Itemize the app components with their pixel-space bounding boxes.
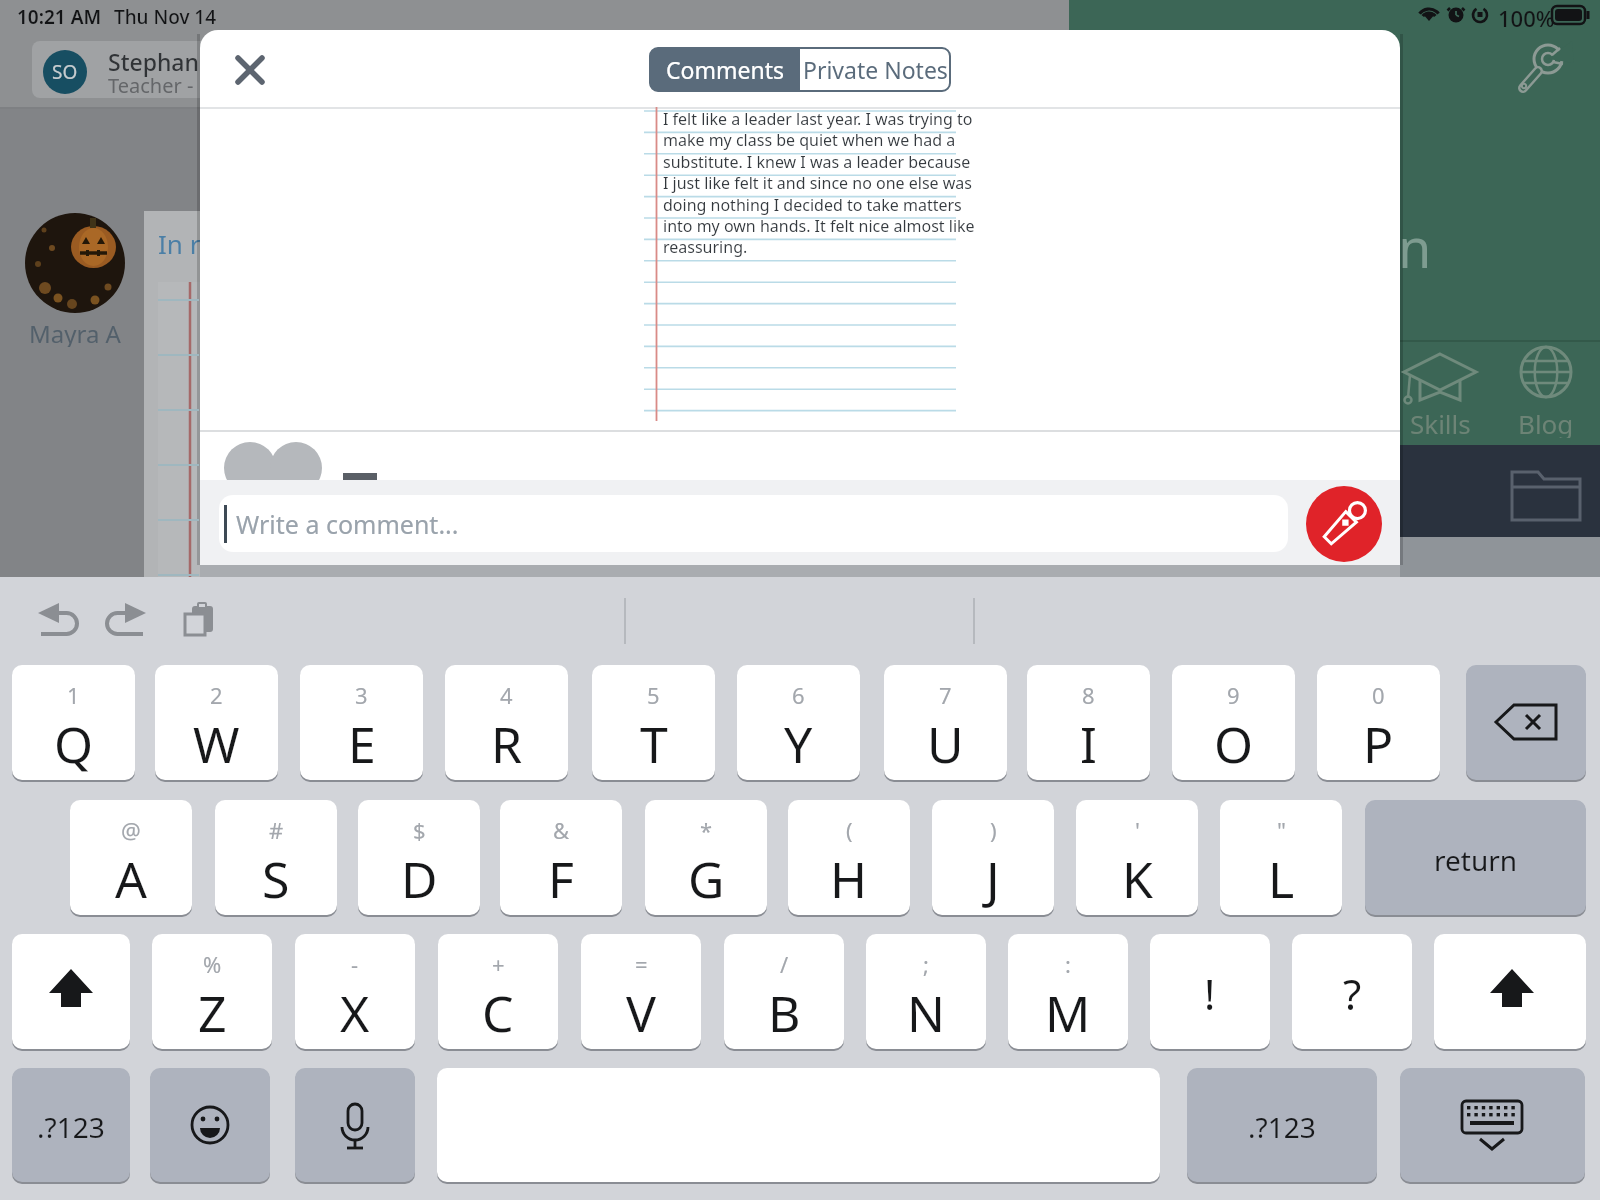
staticText: -: [351, 949, 359, 979]
staticText: 100%: [1498, 3, 1555, 33]
staticText: ): [990, 815, 997, 845]
staticText: 10:21 AM: [17, 4, 102, 30]
staticText: Thu Nov 14: [114, 4, 217, 30]
button[interactable]: ": [1220, 800, 1342, 915]
staticText: (: [846, 815, 853, 845]
button[interactable]: =: [581, 934, 701, 1049]
staticText: SO: [52, 59, 78, 85]
button[interactable]: :: [1008, 934, 1128, 1049]
button[interactable]: -: [295, 934, 415, 1049]
staticText: ": [1277, 815, 1286, 845]
staticText: 0: [1372, 680, 1385, 710]
button[interactable]: Private Notes: [800, 48, 950, 91]
staticText: E: [348, 710, 376, 778]
staticText: 3: [355, 680, 368, 710]
button[interactable]: #: [215, 800, 337, 915]
button[interactable]: [1434, 934, 1586, 1049]
staticText: 1: [67, 680, 80, 710]
button[interactable]: 7: [884, 665, 1007, 780]
button[interactable]: [230, 50, 276, 96]
button[interactable]: [150, 1068, 270, 1182]
button[interactable]: @: [70, 800, 192, 915]
staticText: In re: [158, 226, 215, 261]
button[interactable]: /: [724, 934, 844, 1049]
staticText: 5: [647, 680, 660, 710]
staticText: &: [553, 815, 570, 845]
button[interactable]: +: [438, 934, 558, 1049]
button[interactable]: !: [1150, 934, 1270, 1049]
button[interactable]: ): [932, 800, 1054, 915]
staticText: .?123: [37, 1108, 105, 1146]
staticText: #: [269, 815, 284, 845]
button[interactable]: [12, 934, 130, 1049]
staticText: /: [780, 949, 789, 979]
button[interactable]: %: [152, 934, 272, 1049]
button[interactable]: [1400, 445, 1600, 537]
button[interactable]: [1466, 665, 1586, 780]
staticText: .?123: [1248, 1108, 1316, 1146]
button[interactable]: &: [500, 800, 622, 915]
staticText: W: [193, 710, 240, 778]
button[interactable]: ': [1076, 800, 1198, 915]
staticText: =: [635, 949, 648, 979]
staticText: !: [1204, 965, 1216, 1022]
staticText: ?: [1343, 965, 1362, 1022]
staticText: 8: [1082, 680, 1095, 710]
button[interactable]: 4: [445, 665, 568, 780]
button[interactable]: 8: [1027, 665, 1150, 780]
button[interactable]: Comments: [650, 48, 800, 91]
staticText: Teacher - 10: [108, 72, 222, 99]
button[interactable]: 0: [1317, 665, 1440, 780]
staticText: J: [986, 845, 1000, 913]
staticText: Comments: [666, 54, 784, 85]
button[interactable]: 3: [300, 665, 423, 780]
button[interactable]: ?: [1292, 934, 1412, 1049]
staticText: *: [700, 815, 713, 845]
staticText: ': [1135, 815, 1140, 845]
staticText: R: [491, 710, 523, 778]
button[interactable]: *: [645, 800, 767, 915]
staticText: 2: [210, 680, 223, 710]
staticText: make my class be quiet when we had a: [663, 129, 956, 151]
staticText: return: [1434, 841, 1518, 879]
button[interactable]: 9: [1172, 665, 1295, 780]
staticText: Private Notes: [803, 54, 948, 85]
staticText: I: [1080, 710, 1097, 778]
button[interactable]: 2: [155, 665, 278, 780]
staticText: B: [768, 979, 801, 1047]
staticText: I felt like a leader last year. I was tr…: [663, 108, 973, 130]
staticText: P: [1363, 710, 1394, 778]
button[interactable]: return: [1365, 800, 1586, 915]
button[interactable]: .?123: [1187, 1068, 1377, 1182]
button[interactable]: 1: [12, 665, 135, 780]
button[interactable]: [1400, 1068, 1585, 1182]
staticText: +: [492, 949, 505, 979]
button[interactable]: 6: [737, 665, 860, 780]
staticText: I just like felt it and since no one els…: [663, 172, 972, 194]
button[interactable]: [295, 1068, 415, 1182]
staticText: L: [1268, 845, 1295, 913]
staticText: Blog: [1518, 406, 1574, 438]
staticText: n: [1398, 210, 1432, 284]
button[interactable]: [1306, 486, 1382, 562]
staticText: N: [907, 979, 945, 1047]
staticText: reassuring.: [663, 236, 748, 258]
staticText: substitute. I knew I was a leader becaus…: [663, 151, 971, 173]
button[interactable]: Write a comment...: [219, 495, 1288, 552]
staticText: Skills: [1410, 406, 1471, 438]
staticText: ;: [923, 949, 929, 979]
button[interactable]: (: [788, 800, 910, 915]
staticText: :: [1065, 949, 1071, 979]
button[interactable]: ;: [866, 934, 986, 1049]
staticText: doing nothing I decided to take matters: [663, 194, 962, 216]
staticText: S: [262, 845, 290, 913]
staticText: U: [927, 710, 964, 778]
button[interactable]: $: [358, 800, 480, 915]
staticText: C: [482, 979, 514, 1047]
button[interactable]: 5: [592, 665, 715, 780]
staticText: V: [626, 979, 656, 1047]
button[interactable]: .?123: [12, 1068, 130, 1182]
staticText: G: [688, 845, 725, 913]
staticText: O: [1214, 710, 1254, 778]
